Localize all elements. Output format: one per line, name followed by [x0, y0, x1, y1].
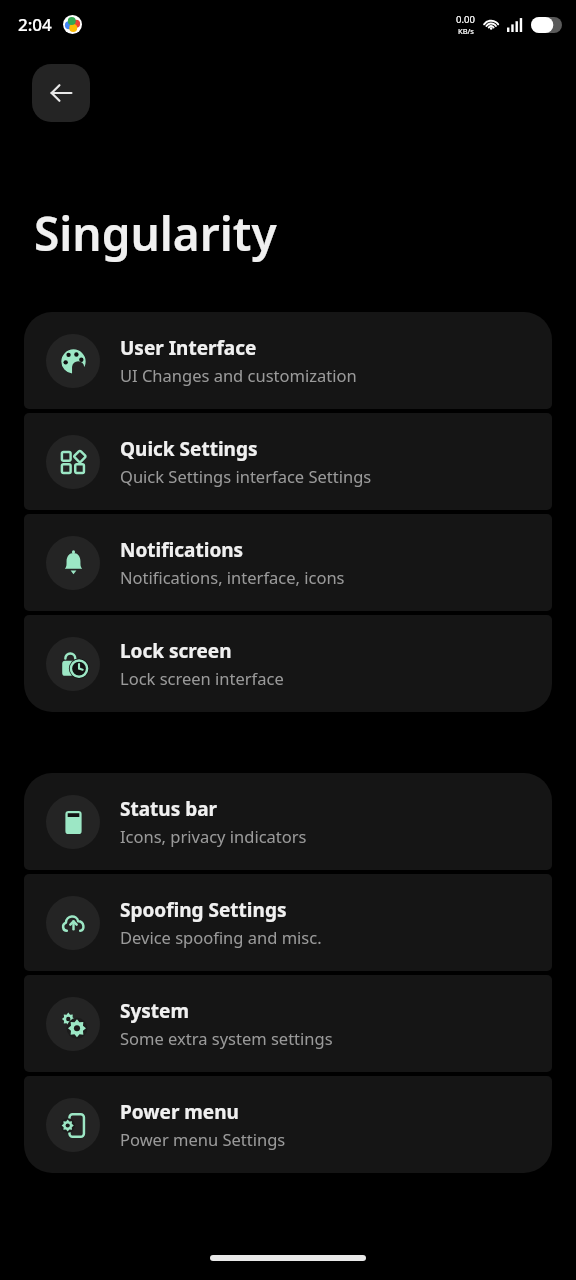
staticText: Some extra system settings — [120, 1027, 333, 1049]
staticText: User Interface — [120, 335, 257, 361]
staticText: 0.00 — [456, 13, 475, 26]
button[interactable]: Quick Settings — [24, 413, 552, 510]
staticText: Power menu — [120, 1099, 239, 1125]
staticText: Singularity — [34, 202, 277, 265]
staticText: Icons, privacy indicators — [120, 825, 307, 847]
staticText: Status bar — [120, 796, 218, 822]
button[interactable]: Spoofing Settings — [24, 874, 552, 971]
staticText: UI Changes and customization — [120, 364, 357, 386]
button[interactable]: Lock screen — [24, 615, 552, 712]
staticText: Quick Settings interface Settings — [120, 465, 372, 487]
staticText: Notifications, interface, icons — [120, 566, 345, 588]
staticText: System — [120, 998, 189, 1024]
button[interactable]: User Interface — [24, 312, 552, 409]
staticText: 2:04 — [18, 13, 52, 36]
button[interactable]: Back — [32, 64, 90, 122]
staticText: KB/s — [458, 26, 474, 36]
staticText: Power menu Settings — [120, 1128, 286, 1150]
staticText: Lock screen interface — [120, 667, 284, 689]
button[interactable]: Status bar — [24, 773, 552, 870]
staticText: Device spoofing and misc. — [120, 926, 322, 948]
staticText: Spoofing Settings — [120, 897, 287, 923]
button[interactable]: Power menu — [24, 1076, 552, 1173]
staticText: Quick Settings — [120, 436, 258, 462]
button[interactable]: Notifications — [24, 514, 552, 611]
staticText: Notifications — [120, 537, 244, 563]
button[interactable]: System — [24, 975, 552, 1072]
staticText: Lock screen — [120, 638, 232, 664]
